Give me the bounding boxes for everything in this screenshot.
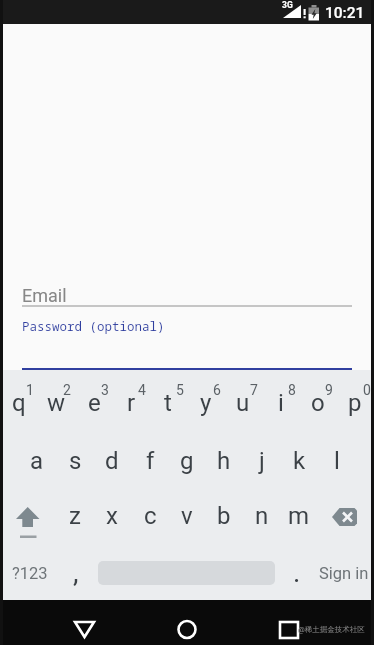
staticText: 5 <box>176 382 184 398</box>
button[interactable] <box>94 485 131 542</box>
button[interactable] <box>318 427 355 485</box>
staticText: Password (optional) <box>22 318 165 335</box>
button[interactable] <box>281 485 318 542</box>
button[interactable] <box>262 600 317 645</box>
staticText: k <box>293 447 306 475</box>
staticText: @稀土掘金技术社区 <box>298 625 365 634</box>
staticText: 3 <box>101 382 109 398</box>
staticText: 3G <box>282 0 293 10</box>
staticText: 1 <box>26 382 34 398</box>
staticText: i <box>278 389 284 417</box>
button[interactable] <box>281 427 318 485</box>
button[interactable] <box>150 370 187 427</box>
button[interactable] <box>299 370 336 427</box>
staticText: r <box>127 389 136 417</box>
staticText: g <box>180 447 194 475</box>
staticText: 6 <box>213 382 221 398</box>
button[interactable] <box>37 370 74 427</box>
staticText: z <box>69 502 81 530</box>
staticText: q <box>12 389 26 417</box>
button[interactable] <box>56 485 93 542</box>
staticText: l <box>334 447 340 475</box>
staticText: e <box>88 389 101 417</box>
button[interactable] <box>56 542 93 600</box>
button[interactable] <box>243 427 280 485</box>
staticText: s <box>69 447 82 475</box>
button[interactable] <box>0 370 37 427</box>
button[interactable] <box>75 370 112 427</box>
button[interactable]: Password (optional) <box>22 318 352 368</box>
button[interactable] <box>206 427 243 485</box>
staticText: u <box>236 389 250 417</box>
button[interactable] <box>337 370 374 427</box>
staticText: x <box>106 502 118 530</box>
staticText: j <box>259 447 265 475</box>
staticText: h <box>217 447 231 475</box>
button[interactable] <box>262 370 299 427</box>
button[interactable] <box>131 485 168 542</box>
button[interactable] <box>187 370 224 427</box>
staticText: a <box>30 447 44 475</box>
button[interactable] <box>160 600 215 645</box>
button[interactable] <box>0 485 56 542</box>
button[interactable] <box>277 542 314 600</box>
staticText: 9 <box>325 382 333 398</box>
button[interactable] <box>168 427 205 485</box>
staticText: t <box>164 389 172 417</box>
staticText: o <box>311 389 325 417</box>
button[interactable] <box>112 370 149 427</box>
staticText: n <box>255 502 269 530</box>
staticText: 2 <box>63 382 71 398</box>
staticText: d <box>105 447 119 475</box>
button[interactable] <box>206 485 243 542</box>
button[interactable] <box>318 485 374 542</box>
staticText: m <box>288 502 310 530</box>
staticText: v <box>181 502 193 530</box>
button[interactable] <box>243 485 280 542</box>
staticText: b <box>217 502 231 530</box>
button[interactable] <box>314 542 374 600</box>
staticText: p <box>348 389 362 417</box>
staticText: . <box>293 556 301 589</box>
button[interactable] <box>19 427 56 485</box>
button[interactable] <box>131 427 168 485</box>
staticText: y <box>200 389 212 417</box>
button[interactable] <box>57 600 112 645</box>
staticText: w <box>47 389 66 417</box>
staticText: , <box>73 556 79 589</box>
button[interactable] <box>168 485 205 542</box>
staticText: ?123 <box>12 564 48 583</box>
button[interactable] <box>0 542 56 600</box>
button[interactable] <box>224 370 261 427</box>
staticText: 0 <box>363 382 371 398</box>
staticText: 7 <box>250 382 258 398</box>
staticText: f <box>146 447 155 475</box>
staticText: 8 <box>288 382 296 398</box>
staticText: Sign in <box>319 564 369 583</box>
staticText: c <box>144 502 157 530</box>
staticText: 4 <box>138 382 146 398</box>
staticText: Email <box>22 285 67 306</box>
button[interactable] <box>94 427 131 485</box>
button[interactable] <box>56 427 93 485</box>
staticText: 10:21 <box>325 4 365 22</box>
button[interactable]: Email <box>22 285 352 315</box>
